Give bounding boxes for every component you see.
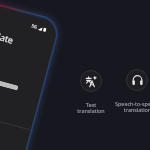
other: Text translation: [86, 76, 97, 87]
other: Speech-to-speech translation: [132, 75, 143, 86]
staticText: Text translation: [77, 101, 105, 115]
staticText: Translate: [0, 25, 15, 47]
button[interactable]: Text translation: [65, 70, 117, 115]
staticText: 5G: [31, 23, 38, 30]
button[interactable]: Speech-to-speech translation: [111, 69, 150, 114]
staticText: Speech-to-speech translation: [115, 100, 150, 114]
